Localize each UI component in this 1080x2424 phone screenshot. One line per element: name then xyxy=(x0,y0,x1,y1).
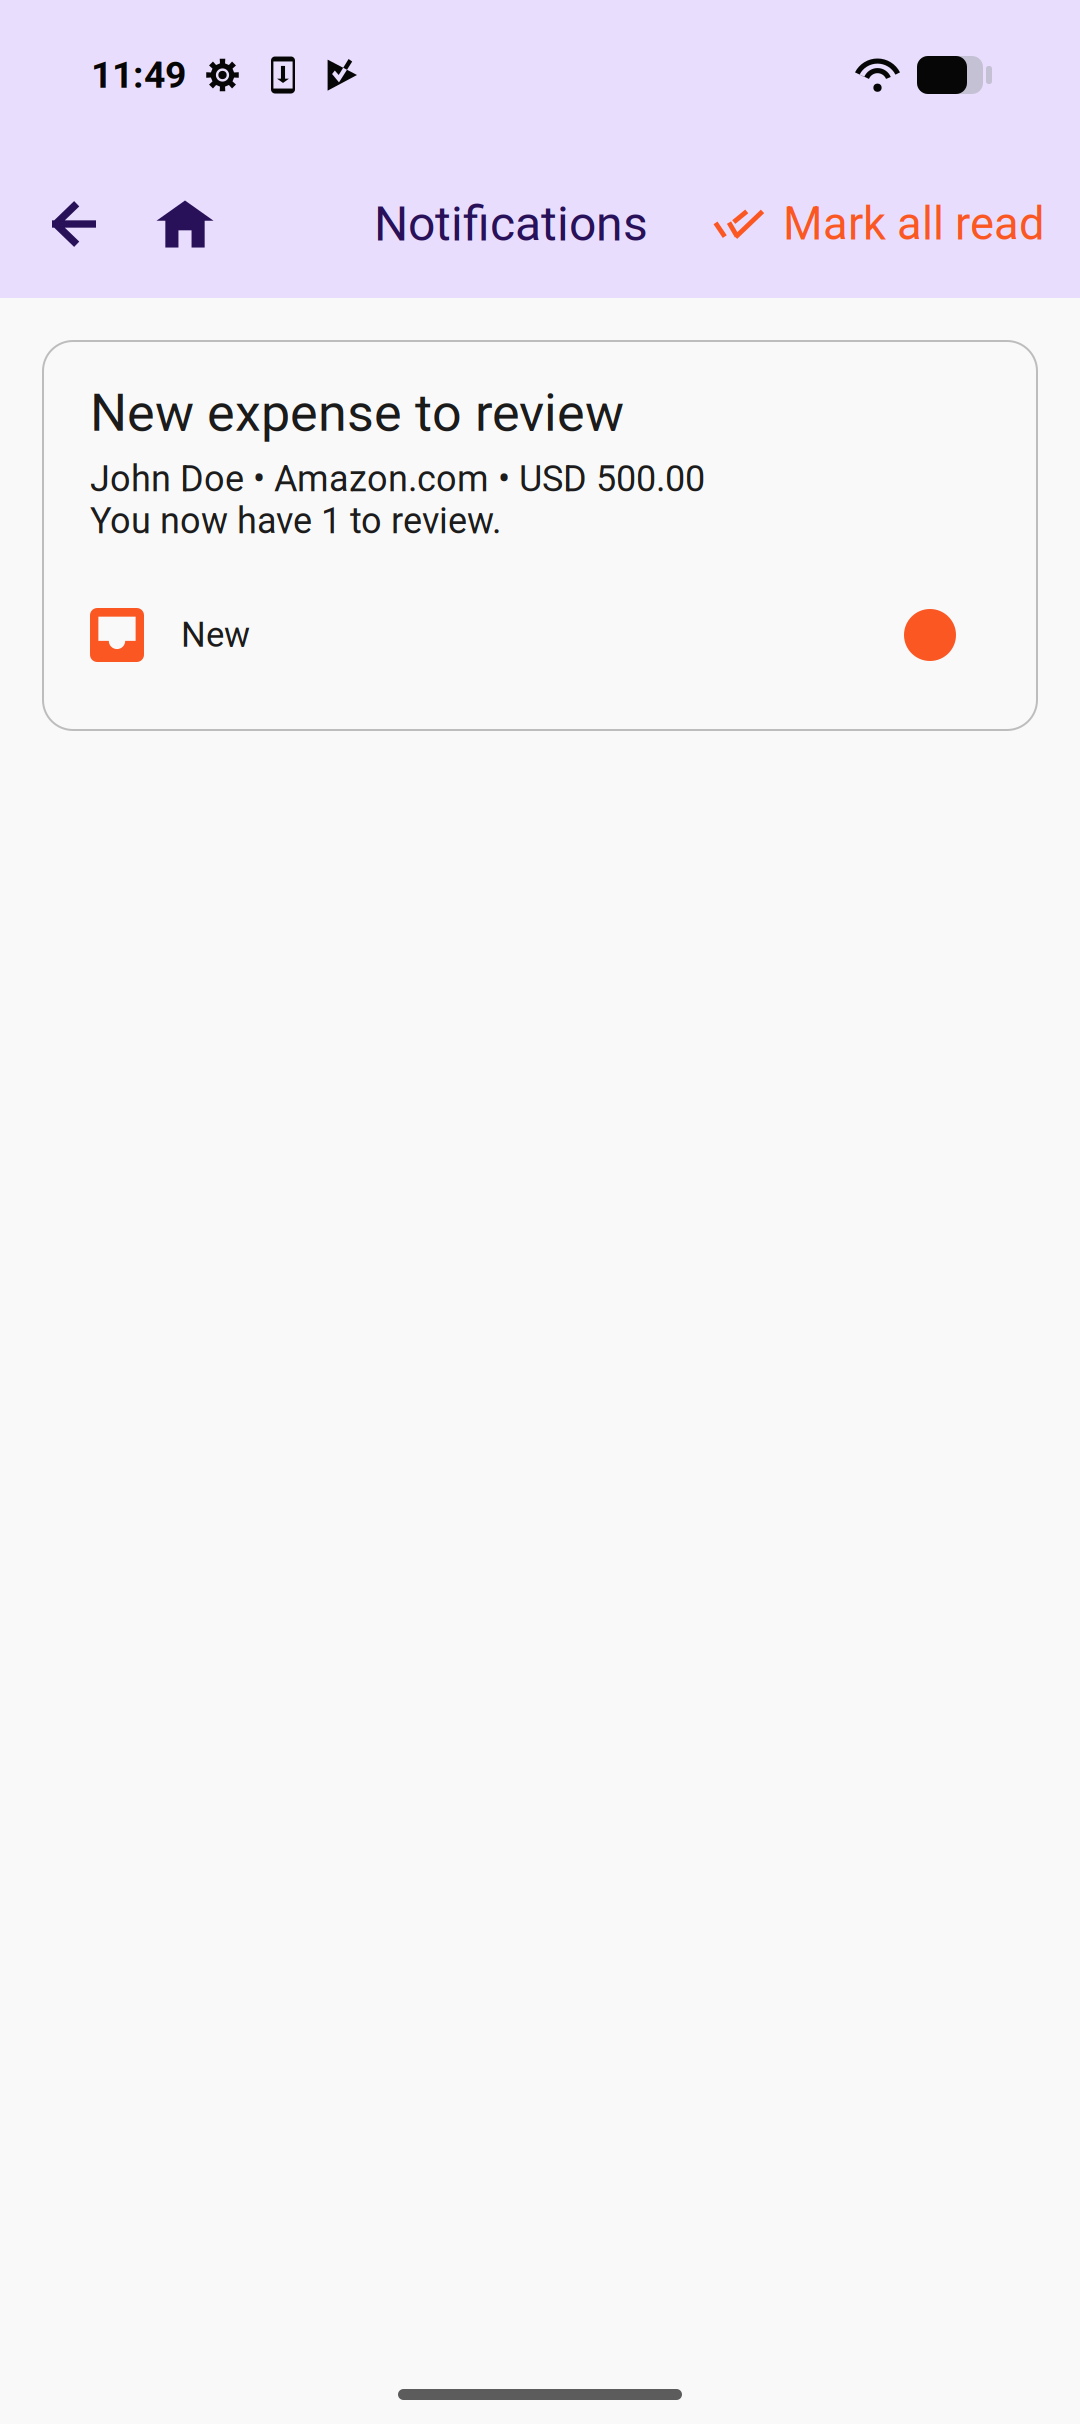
button[interactable]: Home xyxy=(137,150,233,298)
staticText: Notifications xyxy=(374,196,648,252)
staticText: New expense to review xyxy=(90,382,624,443)
button[interactable]: New expense to review xyxy=(43,341,1037,730)
staticText: John Doe • Amazon.com • USD 500.00 xyxy=(90,458,705,500)
staticText: You now have 1 to review. xyxy=(90,500,501,542)
staticText: 11:49 xyxy=(91,53,186,97)
staticText: Mark all read xyxy=(783,197,1045,250)
button[interactable]: Mark all read xyxy=(714,150,1080,298)
staticText: New xyxy=(181,615,250,655)
button[interactable]: Back xyxy=(11,150,137,298)
